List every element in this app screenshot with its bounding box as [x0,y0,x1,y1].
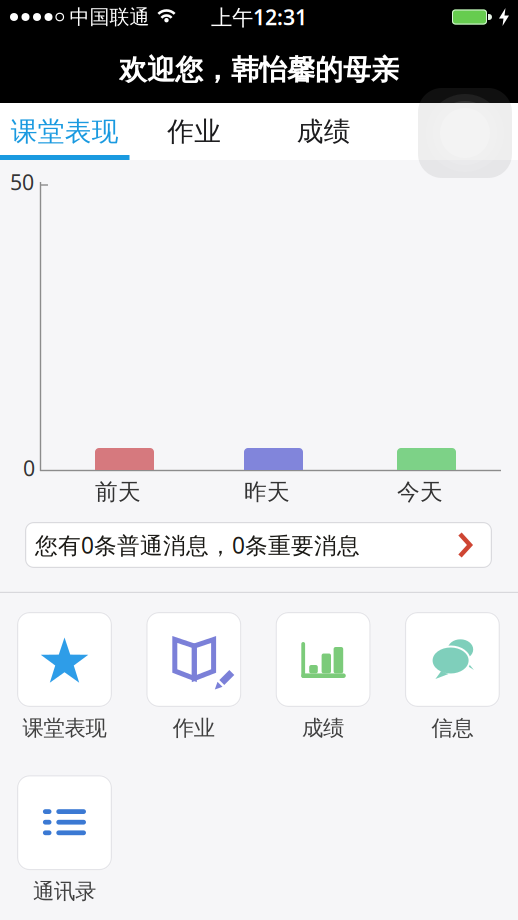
staticText: 前天 [95,478,141,506]
button[interactable]: 成绩 [259,103,388,160]
staticText: 昨天 [244,478,290,506]
button[interactable]: 课堂表现 [17,612,112,741]
staticText: 课堂表现 [22,715,106,741]
button[interactable]: 作业 [129,103,259,160]
staticText: 成绩 [297,115,351,148]
staticText: 您有0条普通消息，0条重要消息 [35,530,360,560]
button[interactable]: 通讯录 [17,775,112,904]
staticText: 欢迎您，韩怡馨的母亲 [119,53,399,87]
staticText: 课堂表现 [11,115,119,148]
staticText: 50 [10,168,34,196]
button[interactable]: 信息 [405,612,500,741]
staticText: 0 [23,454,35,482]
button[interactable]: 课堂表现 [0,103,129,160]
staticText: 上午12:31 [211,3,307,31]
staticText: 成绩 [302,715,344,741]
button[interactable]: 您有0条普通消息，0条重要消息 [25,522,492,568]
button[interactable]: AssistiveTouch [418,88,512,178]
staticText: 信息 [431,715,473,741]
staticText: 作业 [167,115,221,148]
button[interactable]: 作业 [146,612,241,741]
staticText: 通讯录 [33,878,96,904]
staticText: 中国联通 [69,5,149,29]
staticText: 今天 [397,478,443,506]
staticText: 作业 [173,715,215,741]
button[interactable]: 成绩 [276,612,371,741]
